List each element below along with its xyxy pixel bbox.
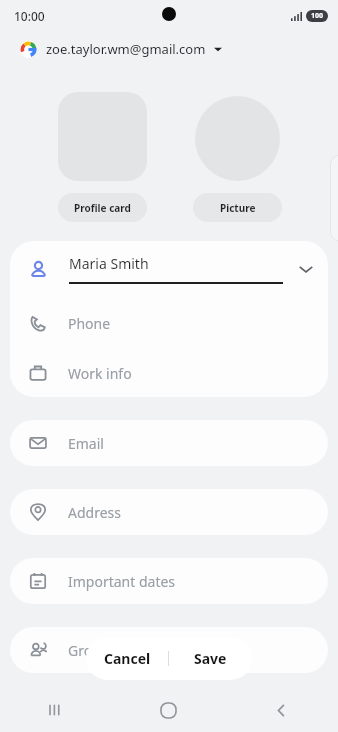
button[interactable]: zoe.taylor.wm@gmail.com <box>0 32 338 66</box>
button[interactable]: Recent apps <box>0 688 112 732</box>
staticText: Important dates <box>68 572 176 591</box>
button[interactable]: Important dates <box>10 558 328 604</box>
staticText: Groups <box>68 641 117 660</box>
staticText: 10:00 <box>14 8 45 24</box>
button[interactable]: Website <box>10 696 328 732</box>
staticText: 100 <box>311 11 324 21</box>
button[interactable]: Maria Smith <box>10 241 328 297</box>
staticText: Phone <box>68 314 111 333</box>
staticText: zoe.taylor.wm@gmail.com <box>46 40 206 58</box>
button[interactable]: Cancel <box>86 637 168 680</box>
staticText: Picture <box>220 201 256 215</box>
button[interactable]: Groups <box>10 627 328 673</box>
staticText: Work info <box>68 364 132 383</box>
button[interactable]: Work info <box>10 349 328 397</box>
button[interactable]: Profile card <box>58 193 147 222</box>
button[interactable]: Phone <box>10 297 328 349</box>
button[interactable]: Home <box>112 688 225 732</box>
staticText: Save <box>194 649 227 668</box>
button[interactable]: Address <box>10 489 328 535</box>
staticText: Maria Smith <box>69 254 149 273</box>
staticText: Profile card <box>74 201 131 215</box>
button[interactable]: Picture <box>193 193 282 222</box>
button[interactable]: Back <box>225 688 338 732</box>
staticText: Email <box>68 434 104 453</box>
staticText: Cancel <box>104 649 151 668</box>
button[interactable]: Expand name fields <box>297 260 315 278</box>
button[interactable]: Email <box>10 420 328 466</box>
button[interactable]: Picture <box>195 96 280 181</box>
staticText: Address <box>68 503 121 522</box>
button[interactable]: Save <box>169 637 252 680</box>
